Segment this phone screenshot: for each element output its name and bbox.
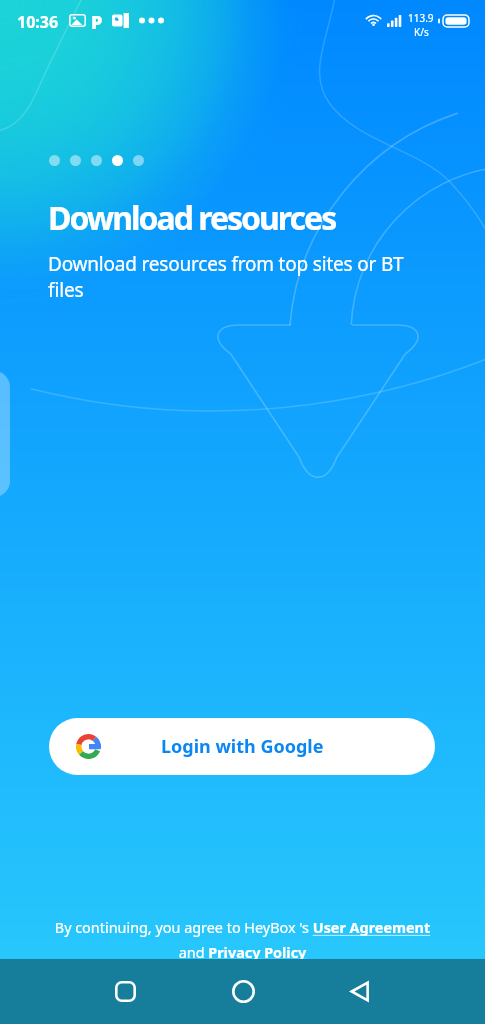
staticText: Download resources	[48, 196, 336, 240]
button[interactable]: Login with Google	[49, 718, 435, 775]
button[interactable]: Home	[217, 965, 269, 1017]
button[interactable]: Recents	[99, 965, 151, 1017]
staticText: 113.9	[408, 11, 434, 25]
button[interactable]: By continuing, you agree to HeyBox 's Us…	[44, 918, 441, 962]
staticText: K/s	[414, 25, 429, 39]
staticText: By continuing, you agree to HeyBox 's Us…	[44, 918, 441, 962]
staticText: P	[91, 10, 103, 35]
button[interactable]: Back	[334, 965, 386, 1017]
staticText: 10:36	[17, 11, 59, 33]
staticText: Download resources from top sites or BT …	[48, 251, 416, 303]
staticText: Login with Google	[161, 734, 324, 759]
